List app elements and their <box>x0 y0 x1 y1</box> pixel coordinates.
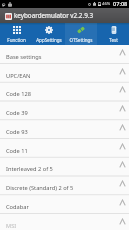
other: Expand <box>120 219 125 224</box>
staticText: Code 39 <box>6 109 28 117</box>
staticText: Function <box>7 37 26 43</box>
staticText: Code 93 <box>6 128 28 136</box>
other: Expand <box>120 162 125 167</box>
button[interactable]: OTSettings <box>65 23 97 45</box>
button[interactable]: Code 39 <box>0 101 129 120</box>
button[interactable]: Interleaved 2 of 5 <box>0 157 129 176</box>
button[interactable]: Codabar <box>0 195 129 214</box>
other: Expand <box>120 144 125 149</box>
staticText: 46% <box>102 1 111 7</box>
staticText: Codabar <box>6 203 29 211</box>
other: Expand <box>120 200 125 205</box>
button[interactable]: Code 11 <box>0 139 129 158</box>
staticText: Code 128 <box>6 90 31 98</box>
staticText: 07:08 <box>113 0 128 8</box>
button[interactable]: Base settings <box>0 45 129 64</box>
staticText: Test <box>109 37 118 43</box>
staticText: Discrete (Standard) 2 of 5 <box>6 184 74 192</box>
staticText: MSI <box>6 222 17 230</box>
other: Expand <box>120 181 125 186</box>
staticText: Base settings <box>6 53 42 61</box>
staticText: Interleaved 2 of 5 <box>6 165 53 173</box>
staticText: Code 11 <box>6 147 28 155</box>
button[interactable]: Code 128 <box>0 82 129 101</box>
button[interactable]: UPC/EAN <box>0 64 129 83</box>
staticText: UPC/EAN <box>6 72 31 80</box>
other: Expand <box>120 106 125 111</box>
button[interactable]: Code 93 <box>0 120 129 139</box>
button[interactable]: MSI <box>0 214 129 230</box>
other: Expand <box>120 125 125 130</box>
button[interactable]: Function <box>0 23 33 45</box>
other: Expand <box>120 50 125 55</box>
other: Expand <box>120 69 125 74</box>
staticText: keyboardemulator v2.2.9.3 <box>14 11 94 20</box>
button[interactable]: Test <box>97 23 129 45</box>
button[interactable]: Discrete (Standard) 2 of 5 <box>0 176 129 195</box>
button[interactable]: AppSettings <box>33 23 65 45</box>
other: Expand <box>120 87 125 92</box>
staticText: OTSettings <box>69 37 93 43</box>
staticText: AppSettings <box>36 37 62 43</box>
